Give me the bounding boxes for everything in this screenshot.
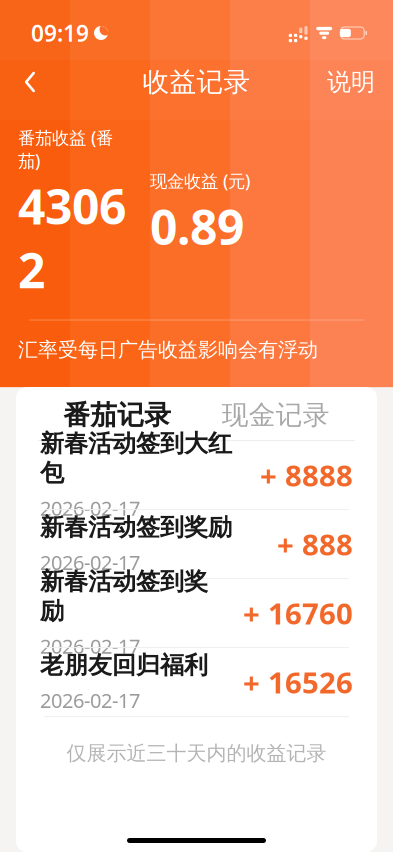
staticText: 2026-02-17 [40, 549, 140, 576]
button[interactable]: 现金记录 [196, 391, 355, 439]
staticText: 收益记录 [142, 66, 250, 98]
staticText: 现金记录 [222, 399, 330, 431]
staticText: 新春活动签到奖励 [40, 513, 232, 542]
button[interactable]: 新春活动签到奖励 [38, 510, 355, 578]
staticText: + 16526 [243, 663, 353, 702]
button[interactable]: 说明 [317, 60, 385, 104]
button[interactable]: 新春活动签到大红包 [38, 441, 355, 509]
staticText: 说明 [327, 67, 375, 97]
staticText: 2026-02-17 [40, 633, 140, 659]
staticText: 老朋友回归福利 [40, 651, 208, 680]
staticText: 新春活动签到大红包 [40, 429, 232, 488]
staticText: 现金收益 (元) [150, 169, 250, 192]
staticText: 0.89 [150, 194, 244, 258]
staticText: + 16760 [243, 594, 353, 633]
staticText: 新春活动签到奖励 [40, 567, 208, 626]
staticText: 09:19 [31, 18, 89, 48]
staticText: 番茄收益 (番茄) [18, 126, 113, 172]
button[interactable]: 番茄记录 [38, 391, 196, 439]
staticText: 仅展示近三十天内的收益记录 [66, 741, 326, 766]
staticText: 2026-02-17 [40, 687, 140, 714]
staticText: 汇率受每日广告收益影响会有浮动 [18, 337, 318, 362]
staticText: + 888 [277, 525, 353, 564]
button[interactable]: 老朋友回归福利 [38, 648, 355, 716]
staticText: 番茄记录 [63, 399, 171, 431]
button[interactable]: 返回 [8, 60, 52, 104]
staticText: + 8888 [260, 456, 353, 495]
staticText: 43062 [18, 174, 126, 301]
staticText: 2026-02-17 [40, 495, 140, 521]
button[interactable]: 新春活动签到奖励 [38, 579, 355, 647]
